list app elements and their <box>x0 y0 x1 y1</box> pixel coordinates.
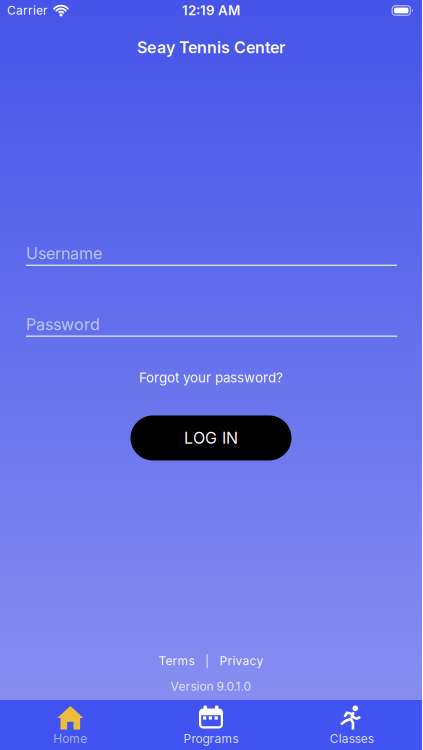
button[interactable]: Home <box>0 700 141 746</box>
staticText: Seay Tennis Center <box>137 38 285 57</box>
staticText: Password <box>26 315 100 334</box>
staticText: Version 9.0.1.0 <box>170 679 251 693</box>
staticText: Carrier <box>7 3 48 18</box>
staticText: Home <box>53 731 87 746</box>
button[interactable]: LOG IN <box>130 415 291 460</box>
staticText: Forgot your password? <box>139 370 283 385</box>
staticText: Classes <box>330 731 374 746</box>
button[interactable]: Classes <box>281 700 422 746</box>
button[interactable]: Forgot your password? <box>139 370 283 385</box>
textField[interactable]: Username <box>0 244 422 266</box>
button[interactable]: Programs <box>141 700 281 746</box>
staticText: | <box>205 654 209 668</box>
button[interactable]: Terms <box>158 654 194 668</box>
staticText: LOG IN <box>184 428 238 447</box>
staticText: Programs <box>183 731 238 746</box>
textField[interactable]: Password <box>0 315 422 337</box>
staticText: 12:19 AM <box>182 3 240 18</box>
staticText: Terms <box>158 654 194 668</box>
staticText: Privacy <box>219 654 263 668</box>
button[interactable]: Privacy <box>219 654 263 668</box>
staticText: Username <box>26 244 102 263</box>
